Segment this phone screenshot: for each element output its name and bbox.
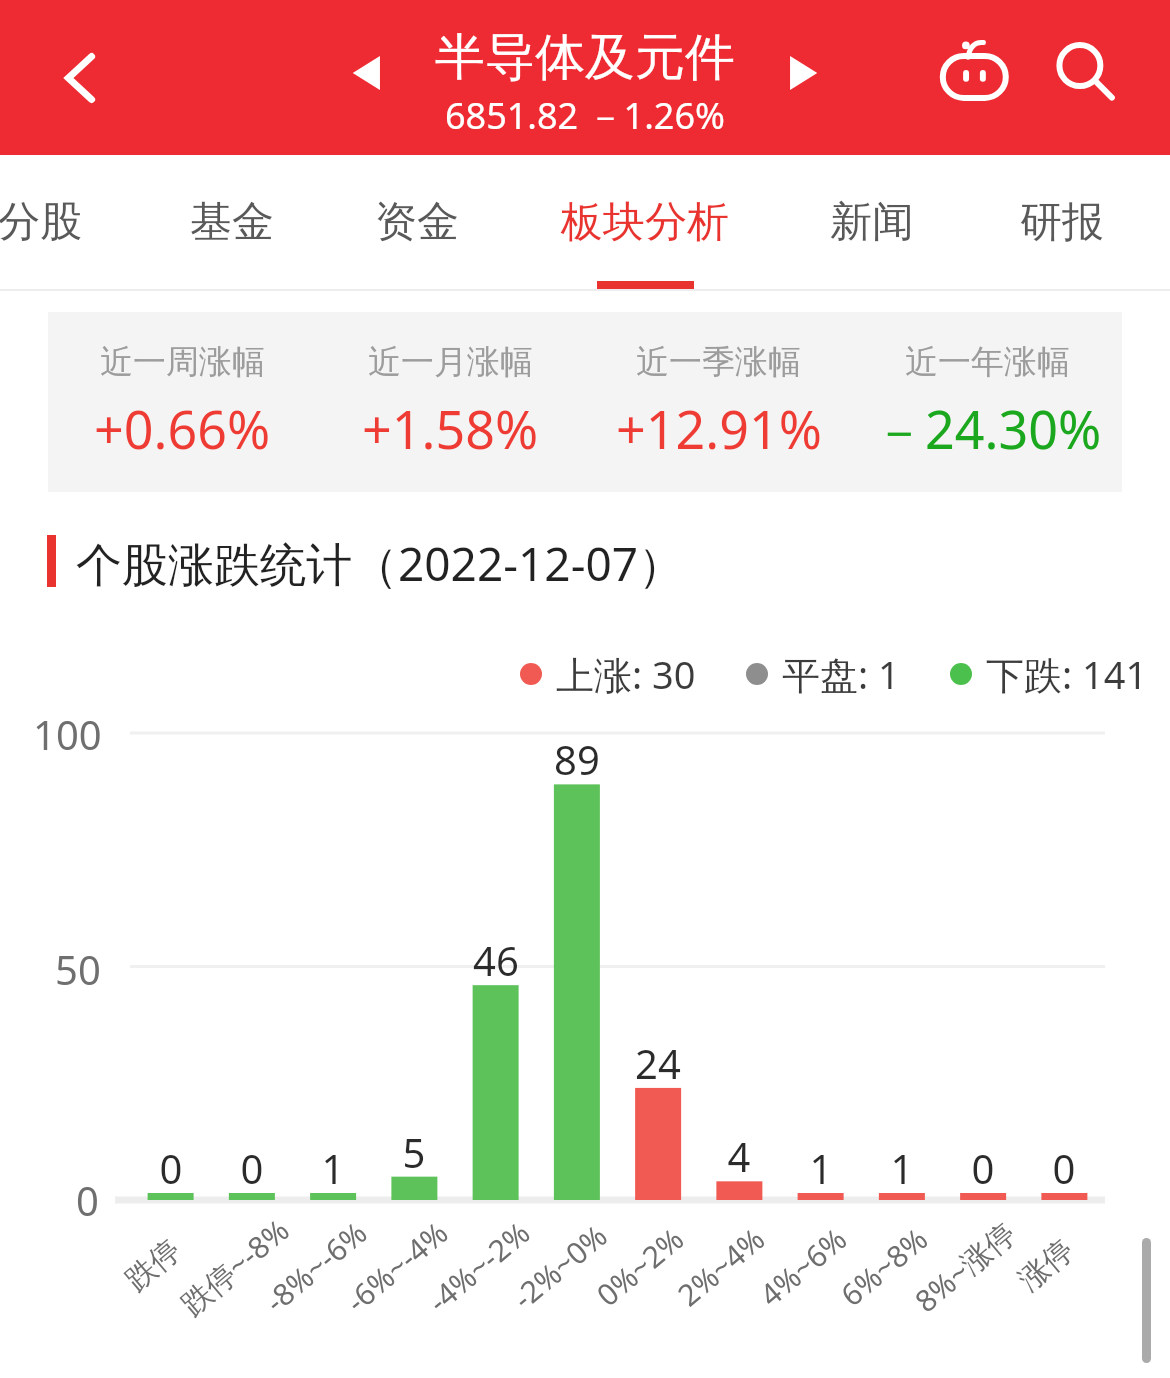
staticText: 个股涨跌统计（2022-12-07） [76, 532, 685, 595]
button[interactable]: 板块分析 [545, 155, 745, 290]
button[interactable]: AI assistant [920, 17, 1030, 127]
staticText: +0.66% [94, 393, 271, 464]
staticText: 分股 [0, 196, 82, 249]
button[interactable]: Back [20, 18, 140, 138]
staticText: 近一月涨幅 [368, 341, 533, 383]
staticText: 89 [537, 732, 617, 786]
staticText: 基金 [190, 196, 274, 249]
staticText: 2%~4% [669, 1218, 773, 1315]
button[interactable]: 资金 [317, 155, 517, 290]
staticText: 跌停 [118, 1231, 188, 1299]
staticText: -4%~-2% [419, 1212, 538, 1321]
staticText: 6%~8% [832, 1218, 936, 1315]
staticText: 46 [456, 933, 536, 987]
staticText: 6851.82 －1.26% [445, 91, 725, 140]
button[interactable]: 基金 [132, 155, 332, 290]
staticText: 平盘: 1 [782, 648, 900, 700]
staticText: -6%~-4% [337, 1212, 456, 1321]
staticText: 0 [131, 1141, 211, 1195]
staticText: 100 [33, 707, 102, 761]
staticText: 0%~2% [588, 1218, 692, 1315]
staticText: 5 [374, 1125, 454, 1179]
staticText: +12.91% [616, 393, 822, 464]
staticText: 4 [699, 1129, 779, 1183]
staticText: 1 [781, 1141, 861, 1195]
staticText: 50 [55, 942, 101, 996]
staticText: 半导体及元件 [435, 26, 735, 89]
staticText: -2%~0% [504, 1215, 615, 1318]
staticText: 板块分析 [561, 196, 729, 249]
staticText: 近一季涨幅 [636, 341, 801, 383]
staticText: 8%~涨停 [906, 1212, 1024, 1321]
staticText: -8%~-6% [256, 1212, 375, 1321]
staticText: －24.30% [873, 393, 1102, 464]
staticText: 0 [943, 1141, 1023, 1195]
staticText: 1 [862, 1141, 942, 1195]
staticText: 研报 [1020, 196, 1104, 249]
button[interactable]: 新闻 [772, 155, 972, 290]
staticText: 涨停 [1011, 1231, 1081, 1299]
staticText: 下跌: 141 [986, 648, 1148, 700]
staticText: 资金 [375, 196, 459, 249]
staticText: 近一周涨幅 [100, 341, 265, 383]
staticText: +1.58% [362, 393, 539, 464]
staticText: 24 [618, 1036, 698, 1090]
staticText: 近一年涨幅 [905, 341, 1070, 383]
staticText: 1 [293, 1141, 373, 1195]
staticText: 新闻 [830, 196, 914, 249]
staticText: 上涨: 30 [556, 648, 696, 700]
button[interactable]: 近一季涨幅 [584, 312, 853, 492]
button[interactable]: Next sector [758, 28, 848, 118]
button[interactable]: Search [1030, 17, 1140, 127]
button[interactable]: 近一年涨幅 [853, 312, 1122, 492]
staticText: 0 [76, 1173, 99, 1227]
button[interactable]: 近一周涨幅 [48, 312, 316, 492]
button[interactable]: Previous sector [322, 28, 412, 118]
button[interactable]: 研报 [962, 155, 1162, 290]
staticText: 4%~6% [751, 1218, 855, 1315]
button[interactable]: 分股 [0, 155, 140, 290]
staticText: 跌停~-8% [172, 1209, 297, 1324]
staticText: 0 [1024, 1141, 1104, 1195]
staticText: 0 [212, 1141, 292, 1195]
button[interactable]: 近一月涨幅 [316, 312, 584, 492]
